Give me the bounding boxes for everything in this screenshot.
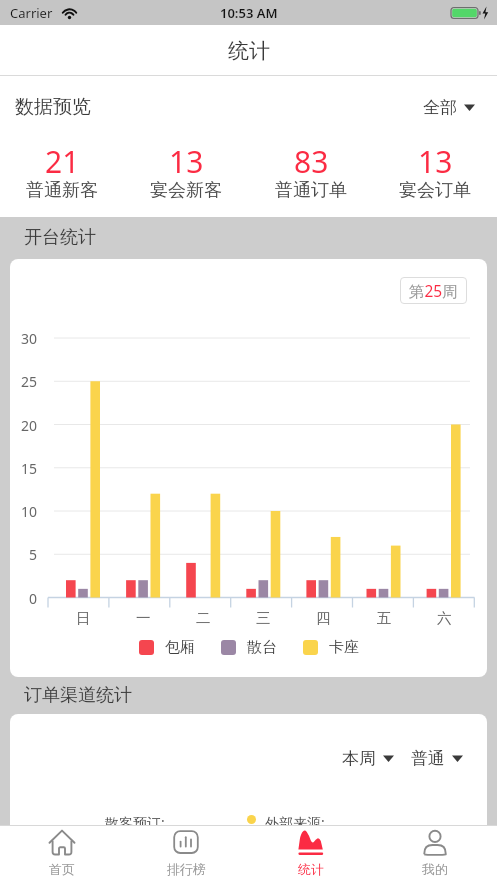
staticText: 一 <box>136 609 151 627</box>
staticText: 83 <box>294 141 329 182</box>
staticText: 订单渠道统计 <box>24 684 132 707</box>
staticText: 卡座 <box>329 638 359 657</box>
staticText: 本周 <box>342 748 376 769</box>
staticText: 25 <box>21 372 38 390</box>
staticText: 二 <box>196 609 211 627</box>
staticText: 10 <box>21 502 38 520</box>
button[interactable]: 13 <box>373 141 497 203</box>
staticText: 首页 <box>49 861 75 877</box>
button[interactable]: 第25周 <box>409 280 458 301</box>
staticText: 统计 <box>228 38 270 64</box>
staticText: 0 <box>29 589 38 607</box>
staticText: 全部 <box>423 97 457 118</box>
button[interactable]: 我的 <box>373 825 497 883</box>
staticText: 数据预览 <box>15 95 91 119</box>
button[interactable]: 首页 <box>0 825 124 883</box>
button[interactable]: 统计 <box>249 825 373 883</box>
staticText: 外部来源: <box>265 813 325 825</box>
staticText: 10:53 AM <box>220 4 278 22</box>
staticText: 20 <box>21 416 38 434</box>
staticText: 宴会订单 <box>399 179 471 200</box>
staticText: 普通 <box>411 748 445 769</box>
staticText: 统计 <box>298 861 324 877</box>
button[interactable]: 普通 <box>411 748 463 769</box>
staticText: 13 <box>418 141 453 182</box>
button[interactable]: 全部 <box>423 97 475 118</box>
staticText: 六 <box>437 609 452 627</box>
staticText: 日 <box>76 609 91 627</box>
staticText: 三 <box>256 609 271 627</box>
staticText: Carrier <box>10 4 53 22</box>
staticText: 包厢 <box>165 638 195 657</box>
staticText: 30 <box>21 329 38 347</box>
button[interactable]: 21 <box>0 141 124 203</box>
staticText: 21 <box>45 141 80 182</box>
staticText: 我的 <box>422 861 448 877</box>
staticText: 宴会新客 <box>150 179 222 200</box>
staticText: 普通新客 <box>26 179 98 200</box>
staticText: 散台 <box>247 638 277 657</box>
staticText: 15 <box>21 459 38 477</box>
staticText: 开台统计 <box>24 226 96 249</box>
button[interactable]: 83 <box>249 141 373 203</box>
staticText: 5 <box>29 545 38 563</box>
button[interactable]: 排行榜 <box>124 825 248 883</box>
staticText: 五 <box>377 609 392 627</box>
staticText: 13 <box>169 141 204 182</box>
staticText: 第25周 <box>409 280 458 301</box>
staticText: 普通订单 <box>275 179 347 200</box>
staticText: 排行榜 <box>167 861 206 877</box>
staticText: 散客预订: <box>105 813 165 825</box>
button[interactable]: 13 <box>124 141 248 203</box>
button[interactable]: 本周 <box>342 748 394 769</box>
staticText: 四 <box>316 609 331 627</box>
